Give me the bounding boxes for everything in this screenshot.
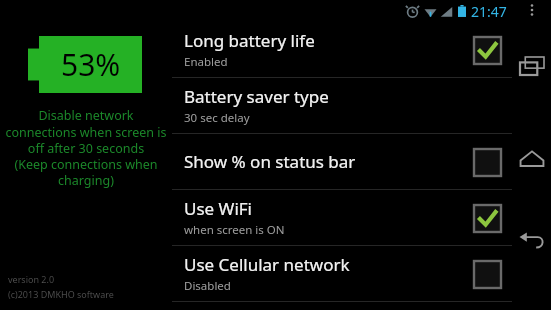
- staticText: 53%: [61, 44, 121, 85]
- button[interactable]: Back: [512, 222, 551, 258]
- staticText: (c)2013 DMKHO software: [8, 288, 114, 300]
- staticText: Enabled: [184, 54, 228, 70]
- staticText: Battery saver type: [184, 85, 329, 108]
- staticText: 30 sec delay: [184, 110, 250, 126]
- button[interactable]: [470, 201, 504, 235]
- staticText: Use Cellular network: [184, 253, 350, 276]
- button[interactable]: More options: [530, 3, 534, 17]
- staticText: 21:47: [471, 2, 507, 20]
- button[interactable]: [470, 33, 504, 67]
- button[interactable]: [470, 257, 504, 291]
- button[interactable]: Use WiFi: [172, 190, 512, 246]
- staticText: Disable network connections when screen …: [5, 107, 167, 188]
- button[interactable]: Long battery life: [172, 22, 512, 78]
- button[interactable]: Show % on status bar: [172, 134, 512, 190]
- staticText: Long battery life: [184, 29, 315, 52]
- staticText: Disabled: [184, 278, 231, 294]
- staticText: Show % on status bar: [184, 150, 356, 173]
- button[interactable]: Recent apps: [512, 48, 551, 84]
- staticText: when screen is ON: [184, 222, 285, 238]
- button[interactable]: Home: [512, 140, 551, 176]
- staticText: version 2.0: [8, 273, 55, 285]
- button[interactable]: Battery saver type: [172, 78, 512, 134]
- button[interactable]: Use Cellular network: [172, 246, 512, 302]
- button[interactable]: [470, 145, 504, 179]
- staticText: Use WiFi: [184, 197, 252, 220]
